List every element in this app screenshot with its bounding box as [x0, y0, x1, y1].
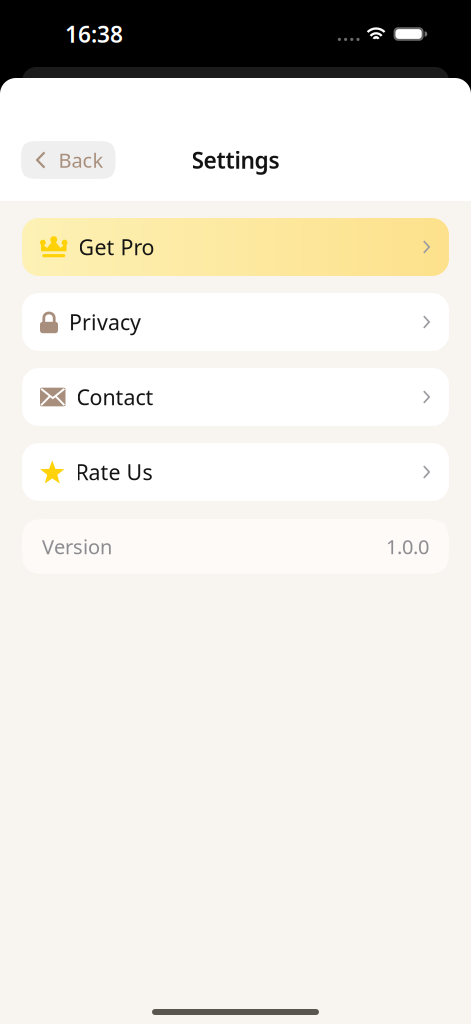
- staticText: Contact: [76, 383, 153, 411]
- staticText: Settings: [191, 145, 279, 175]
- staticText: Rate Us: [75, 458, 152, 486]
- button[interactable]: Back: [21, 141, 116, 179]
- button[interactable]: Contact: [22, 368, 449, 426]
- staticText: Privacy: [69, 308, 141, 336]
- button[interactable]: Rate Us: [22, 443, 449, 501]
- button[interactable]: Get Pro: [22, 218, 449, 276]
- staticText: Version: [42, 533, 112, 560]
- staticText: 16:38: [65, 19, 123, 49]
- staticText: Get Pro: [78, 233, 154, 261]
- button[interactable]: Privacy: [22, 293, 449, 351]
- staticText: 1.0.0: [386, 533, 429, 560]
- staticText: Back: [59, 147, 104, 173]
